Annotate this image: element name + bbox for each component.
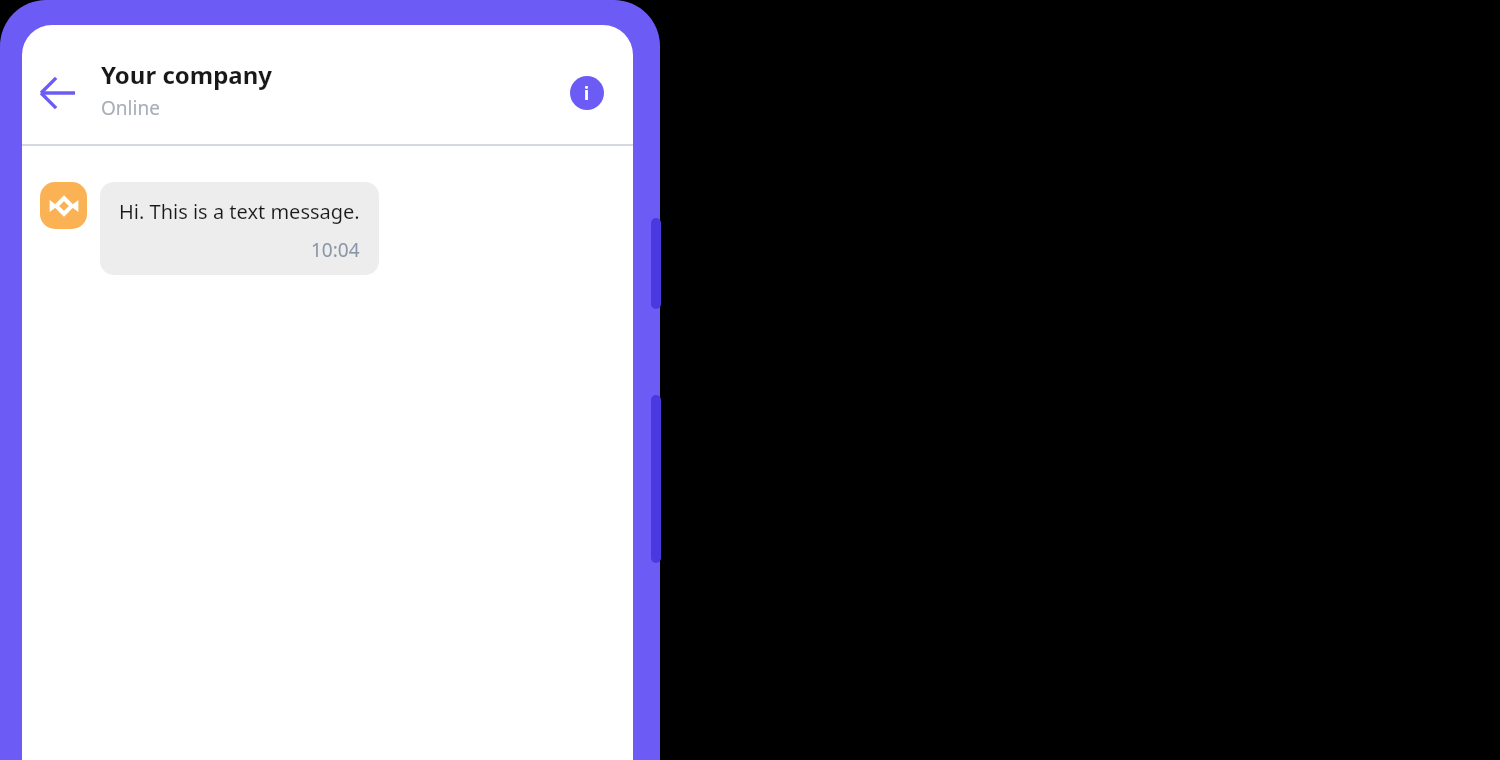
button[interactable]: Company avatar — [40, 182, 87, 229]
staticText: Hi. This is a text message. — [119, 198, 360, 225]
staticText: 10:04 — [311, 237, 360, 263]
button[interactable]: Information — [570, 76, 604, 110]
button[interactable]: Hi. This is a text message. — [100, 182, 379, 275]
button[interactable]: Back — [34, 69, 82, 117]
staticText: Online — [101, 95, 160, 121]
staticText: Your company — [101, 58, 273, 91]
staticText: i — [584, 82, 590, 105]
